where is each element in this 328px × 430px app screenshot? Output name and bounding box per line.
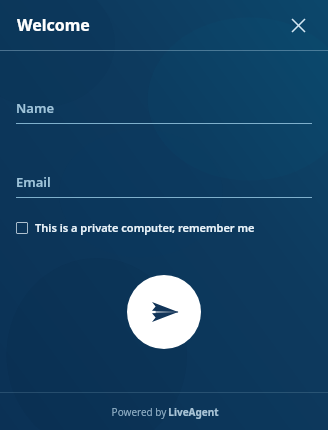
- staticText: Name: [16, 99, 54, 117]
- button[interactable]: Send: [127, 275, 201, 349]
- staticText: Powered by: [110, 405, 168, 419]
- button[interactable]: This is a private computer, remember me: [16, 217, 255, 238]
- button[interactable]: Close: [282, 9, 314, 41]
- staticText: LiveAgent: [168, 405, 219, 419]
- staticText: This is a private computer, remember me: [35, 220, 255, 235]
- staticText: Email: [16, 173, 51, 191]
- staticText: Welcome: [17, 14, 90, 36]
- button[interactable]: Name: [16, 99, 312, 124]
- button[interactable]: Email: [16, 173, 312, 198]
